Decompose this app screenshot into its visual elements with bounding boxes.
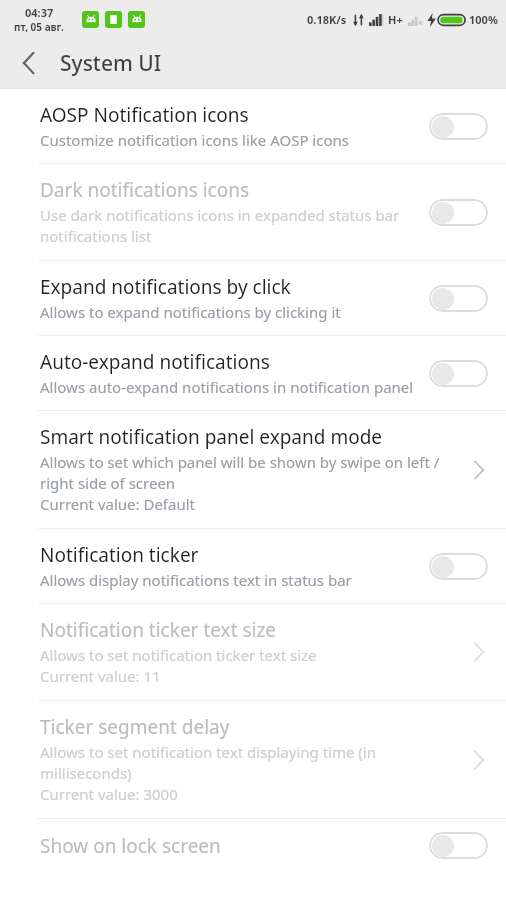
staticText: H+ (388, 12, 403, 27)
button[interactable]: AOSP Notification icons (0, 89, 506, 163)
button[interactable]: Toggle (429, 285, 488, 312)
staticText: Dark notifications icons (40, 177, 250, 203)
button[interactable]: Toggle (429, 113, 488, 140)
button[interactable]: Toggle (429, 553, 488, 580)
button[interactable]: Back (6, 41, 50, 85)
staticText: Allows to expand notifications by clicki… (40, 302, 341, 322)
staticText: Use dark notifications icons in expanded… (40, 205, 415, 247)
staticText: Smart notification panel expand mode (40, 424, 383, 450)
staticText: System UI (60, 49, 162, 78)
button[interactable]: Notification ticker (0, 529, 506, 603)
button[interactable]: Notification ticker text size (0, 604, 506, 700)
staticText: Expand notifications by click (40, 274, 291, 300)
staticText: пт, 05 авг. (14, 20, 64, 34)
button[interactable]: Expand notifications by click (0, 261, 506, 335)
staticText: AOSP Notification icons (40, 102, 249, 128)
button[interactable]: Toggle (429, 832, 488, 859)
button[interactable]: Smart notification panel expand mode (0, 411, 506, 528)
staticText: Notification ticker (40, 542, 199, 568)
button[interactable]: Toggle (429, 199, 488, 226)
staticText: Customize notification icons like AOSP i… (40, 130, 349, 150)
button[interactable]: Toggle (429, 360, 488, 387)
button[interactable]: Show on lock screen (0, 819, 506, 872)
staticText: Allows to set notification text displayi… (40, 742, 458, 805)
staticText: Allows to set notification ticker text s… (40, 645, 317, 687)
staticText: Allows auto-expand notifications in noti… (40, 377, 414, 397)
staticText: 100% (469, 12, 498, 27)
staticText: 04:37 (25, 5, 54, 20)
staticText: Allows to set which panel will be shown … (40, 452, 458, 515)
staticText: Allows display notifications text in sta… (40, 570, 352, 590)
staticText: Auto-expand notifications (40, 349, 270, 375)
staticText: Ticker segment delay (40, 714, 230, 740)
staticText: Show on lock screen (40, 833, 221, 859)
button[interactable]: Dark notifications icons (0, 164, 506, 260)
staticText: 0.18K/s (307, 12, 347, 27)
button[interactable]: Ticker segment delay (0, 701, 506, 818)
button[interactable]: Auto-expand notifications (0, 336, 506, 410)
staticText: Notification ticker text size (40, 617, 277, 643)
